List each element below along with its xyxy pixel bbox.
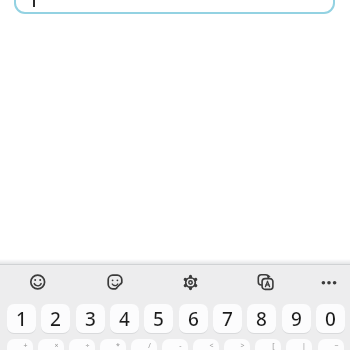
staticText: / bbox=[148, 341, 151, 350]
staticText: 3 bbox=[85, 306, 96, 332]
staticText: 9 bbox=[291, 306, 302, 332]
button[interactable]: 3 bbox=[76, 304, 105, 333]
staticText: | bbox=[302, 341, 306, 350]
button[interactable]: 4 bbox=[110, 304, 139, 333]
staticText: 4 bbox=[119, 306, 130, 332]
button[interactable]: ~ bbox=[318, 339, 344, 350]
staticText: 2 bbox=[50, 306, 61, 332]
button[interactable]: ÷ bbox=[69, 339, 95, 350]
staticText: × bbox=[54, 341, 59, 350]
button[interactable]: 6 bbox=[179, 304, 208, 333]
button[interactable]: > bbox=[224, 339, 250, 350]
staticText: * bbox=[116, 341, 120, 350]
staticText: 6 bbox=[188, 306, 199, 332]
button[interactable]: 7 bbox=[213, 304, 242, 333]
staticText: 0 bbox=[325, 306, 336, 332]
button[interactable]: 2 bbox=[41, 304, 70, 333]
button[interactable] bbox=[14, 0, 335, 14]
button[interactable]: × bbox=[38, 339, 64, 350]
staticText: 5 bbox=[153, 306, 164, 332]
button[interactable]: - bbox=[162, 339, 188, 350]
button[interactable] bbox=[96, 263, 134, 302]
button[interactable] bbox=[247, 263, 285, 302]
staticText: > bbox=[240, 341, 245, 350]
button[interactable]: 0 bbox=[316, 304, 345, 333]
button[interactable] bbox=[19, 263, 57, 302]
staticText: - bbox=[179, 341, 182, 350]
staticText: ÷ bbox=[85, 341, 90, 350]
staticText: < bbox=[209, 341, 214, 350]
button[interactable]: 8 bbox=[247, 304, 276, 333]
staticText: ~ bbox=[334, 341, 339, 350]
button[interactable]: | bbox=[286, 339, 312, 350]
staticText: 7 bbox=[222, 306, 233, 332]
button[interactable]: 9 bbox=[282, 304, 311, 333]
button[interactable]: * bbox=[100, 339, 126, 350]
staticText: [ bbox=[272, 341, 275, 350]
button[interactable]: 1 bbox=[7, 304, 36, 333]
button[interactable]: [ bbox=[255, 339, 281, 350]
button[interactable]: < bbox=[193, 339, 219, 350]
button[interactable]: 5 bbox=[144, 304, 173, 333]
button[interactable]: + bbox=[7, 339, 33, 350]
button[interactable]: / bbox=[131, 339, 157, 350]
staticText: 8 bbox=[256, 306, 267, 332]
staticText: + bbox=[23, 341, 28, 350]
button[interactable] bbox=[310, 263, 348, 302]
button[interactable] bbox=[172, 263, 210, 302]
staticText: 1 bbox=[16, 306, 27, 332]
